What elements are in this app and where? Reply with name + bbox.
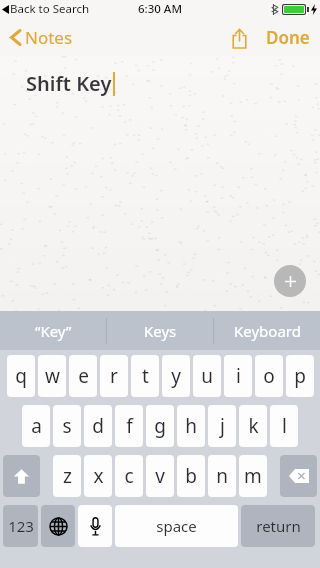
button[interactable]: v [146, 455, 174, 497]
button[interactable]: Keyboard [214, 311, 320, 350]
staticText: p [294, 363, 306, 389]
button[interactable]: j [208, 405, 236, 447]
button[interactable]: m [239, 455, 267, 497]
button[interactable]: h [177, 405, 205, 447]
button[interactable]: c [115, 455, 143, 497]
button[interactable]: Keys [107, 311, 213, 350]
button[interactable]: t [131, 355, 159, 397]
staticText: q [15, 363, 27, 389]
button[interactable]: f [115, 405, 143, 447]
button[interactable]: r [100, 355, 128, 397]
staticText: z [63, 463, 72, 489]
staticText: b [185, 463, 197, 489]
button[interactable]: space [115, 505, 238, 547]
button[interactable]: b [177, 455, 205, 497]
staticText: d [92, 413, 104, 439]
staticText: Shift Key [26, 70, 112, 97]
staticText: o [263, 363, 275, 389]
staticText: g [154, 413, 166, 439]
button[interactable]: p [286, 355, 314, 397]
button[interactable]: q [7, 355, 35, 397]
button[interactable]: l [270, 405, 298, 447]
staticText: m [244, 463, 262, 489]
staticText: Keyboard [234, 321, 301, 341]
staticText: Back to Search [10, 1, 90, 17]
staticText: return [256, 516, 301, 536]
staticText: i [236, 363, 241, 389]
staticText: l [282, 413, 287, 439]
button[interactable]: e [69, 355, 97, 397]
staticText: h [185, 413, 197, 439]
button[interactable]: k [239, 405, 267, 447]
button[interactable]: d [84, 405, 112, 447]
button[interactable]: z [53, 455, 81, 497]
staticText: u [201, 363, 213, 389]
staticText: a [31, 413, 42, 439]
button[interactable]: Backspace [280, 455, 317, 497]
staticText: x [93, 463, 104, 489]
button[interactable]: i [224, 355, 252, 397]
staticText: c [124, 463, 134, 489]
button[interactable]: 123 [3, 505, 38, 547]
staticText: 6:30 AM [138, 1, 182, 17]
button[interactable]: g [146, 405, 174, 447]
button[interactable]: Add [274, 265, 306, 297]
button[interactable]: Share [222, 21, 256, 55]
staticText: s [62, 413, 72, 439]
staticText: “Key” [35, 321, 72, 341]
staticText: j [220, 413, 225, 439]
button[interactable]: Done [256, 20, 320, 55]
staticText: y [171, 363, 181, 389]
button[interactable]: Notes [0, 22, 81, 53]
staticText: t [142, 363, 149, 389]
button[interactable]: u [193, 355, 221, 397]
button[interactable]: y [162, 355, 190, 397]
staticText: f [126, 413, 133, 439]
button[interactable]: Switch keyboard [41, 505, 75, 547]
staticText: k [248, 413, 259, 439]
staticText: n [216, 463, 228, 489]
button[interactable]: return [241, 505, 315, 547]
button[interactable]: x [84, 455, 112, 497]
button[interactable]: Shift [3, 455, 40, 497]
button[interactable]: a [22, 405, 50, 447]
button[interactable]: “Key” [0, 311, 106, 350]
staticText: r [110, 363, 118, 389]
staticText: Notes [25, 26, 73, 49]
button[interactable]: o [255, 355, 283, 397]
staticText: Done [266, 26, 310, 49]
button[interactable]: Dictate [78, 505, 112, 547]
button[interactable]: w [38, 355, 66, 397]
staticText: e [78, 363, 89, 389]
staticText: v [155, 463, 165, 489]
staticText: Keys [144, 321, 177, 341]
staticText: 123 [8, 516, 34, 536]
staticText: space [156, 516, 197, 536]
button[interactable]: s [53, 405, 81, 447]
staticText: w [45, 363, 60, 389]
button[interactable]: n [208, 455, 236, 497]
